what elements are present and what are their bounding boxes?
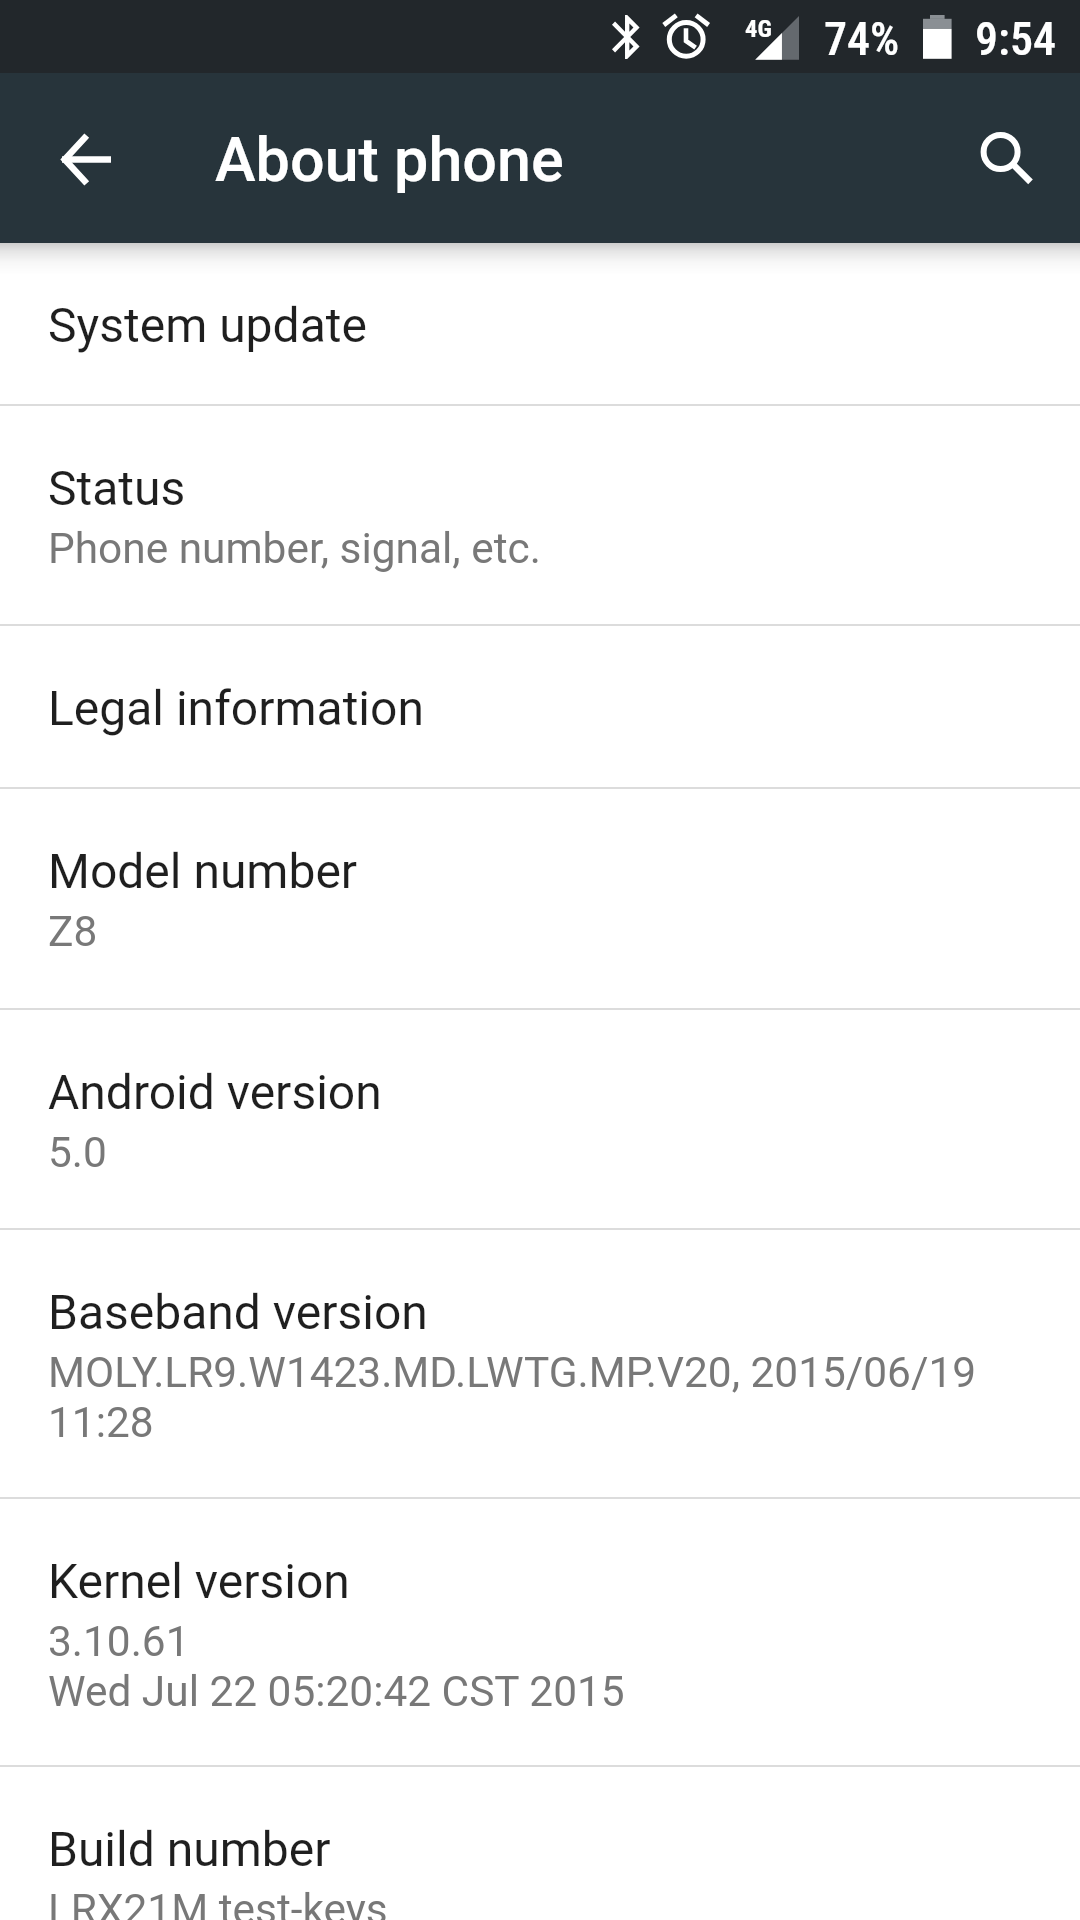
staticText: Kernel version <box>48 1553 350 1609</box>
staticText: Build number <box>48 1821 331 1877</box>
button[interactable]: Baseband version <box>0 1230 1080 1497</box>
staticText: About phone <box>215 124 564 195</box>
staticText: Status <box>48 460 186 516</box>
button[interactable]: Search <box>954 105 1060 211</box>
button[interactable]: Android version <box>0 1010 1080 1228</box>
button[interactable]: Model number <box>0 789 1080 1008</box>
button[interactable]: Navigate up <box>33 106 140 213</box>
button[interactable]: Status <box>0 406 1080 624</box>
staticText: LRX21M test-keys <box>48 1885 388 1920</box>
button[interactable]: Build number <box>0 1767 1080 1920</box>
staticText: 5.0 <box>48 1128 107 1178</box>
staticText: Phone number, signal, etc. <box>48 524 541 574</box>
staticText: Baseband version <box>48 1284 428 1340</box>
staticText: 9:54 <box>975 12 1057 66</box>
button[interactable]: Kernel version <box>0 1499 1080 1765</box>
button[interactable]: System update <box>0 243 1080 404</box>
button[interactable]: Legal information <box>0 626 1080 787</box>
staticText: System update <box>48 297 367 353</box>
staticText: MOLY.LR9.W1423.MD.LWTG.MP.V20, 2015/06/1… <box>48 1348 977 1448</box>
staticText: Model number <box>48 843 358 899</box>
staticText: Android version <box>48 1064 382 1120</box>
staticText: Legal information <box>48 680 424 736</box>
staticText: 3.10.61 Wed Jul 22 05:20:42 CST 2015 <box>48 1617 625 1717</box>
staticText: Z8 <box>48 907 98 957</box>
staticText: 4G <box>745 14 772 43</box>
staticText: 74% <box>824 12 900 66</box>
